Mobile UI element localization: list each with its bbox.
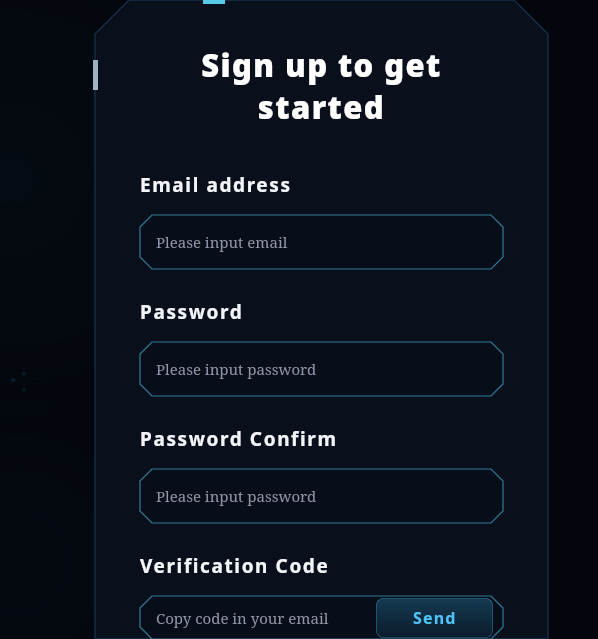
staticText: Email address bbox=[140, 172, 292, 198]
staticText: Verification Code bbox=[140, 553, 330, 579]
staticText: Please input email bbox=[156, 232, 288, 252]
button[interactable]: Please input password bbox=[140, 342, 503, 396]
button[interactable]: Please input email bbox=[140, 215, 503, 269]
staticText: Sign up to get started bbox=[140, 44, 503, 128]
staticText: Please input password bbox=[156, 359, 317, 379]
button[interactable]: Copy code in your email bbox=[140, 596, 503, 639]
staticText: Password bbox=[140, 299, 244, 325]
button[interactable]: Please input password bbox=[140, 469, 503, 523]
button[interactable]: Send verification code bbox=[376, 598, 493, 638]
staticText: Password Confirm bbox=[140, 426, 338, 452]
staticText: Send bbox=[413, 607, 457, 629]
staticText: Please input password bbox=[156, 486, 317, 506]
staticText: Copy code in your email bbox=[156, 608, 329, 628]
